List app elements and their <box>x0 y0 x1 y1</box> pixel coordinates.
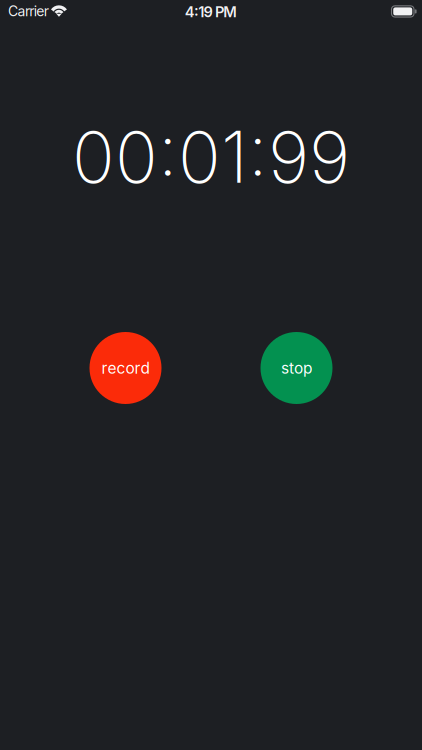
staticText: 4:19 PM <box>185 3 237 21</box>
staticText: record <box>101 359 149 377</box>
staticText: Carrier <box>8 3 49 19</box>
button[interactable]: stop <box>260 332 332 404</box>
staticText: 00:01:99 <box>72 114 350 200</box>
staticText: stop <box>281 359 312 377</box>
button[interactable]: record <box>89 332 161 404</box>
